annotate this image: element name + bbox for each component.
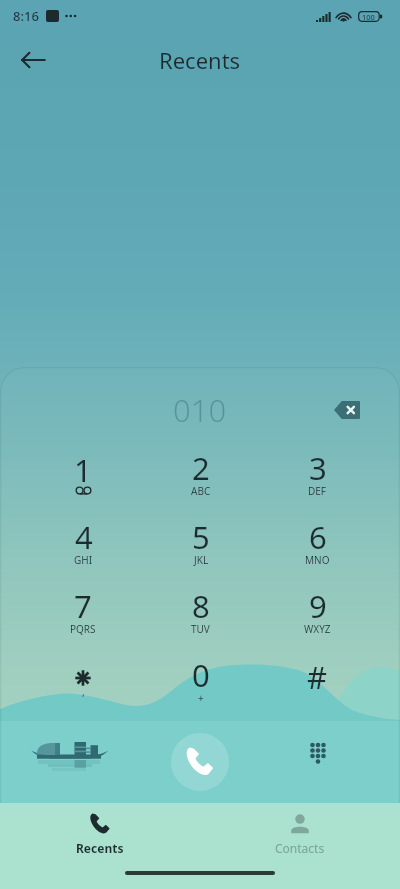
staticText: 6 bbox=[309, 516, 327, 558]
button[interactable]: Back bbox=[12, 39, 54, 81]
button[interactable]: Contacts bbox=[200, 803, 400, 865]
staticText: Recents bbox=[76, 840, 124, 856]
staticText: 5 bbox=[192, 516, 210, 558]
button[interactable]: Keypad bbox=[297, 732, 339, 774]
button[interactable]: 6 bbox=[259, 509, 376, 578]
button[interactable]: , bbox=[24, 647, 142, 716]
button[interactable]: 5 bbox=[142, 509, 259, 578]
button[interactable]: 7 bbox=[24, 578, 142, 647]
button[interactable]: 0 bbox=[142, 647, 259, 716]
button[interactable]: Delete bbox=[330, 393, 364, 427]
button[interactable]: 8 bbox=[142, 578, 259, 647]
staticText: 3 bbox=[309, 447, 327, 489]
button[interactable]: 4 bbox=[24, 509, 142, 578]
button[interactable]: Recents bbox=[0, 803, 200, 865]
staticText: DEF bbox=[308, 484, 327, 498]
staticText: GHI bbox=[74, 553, 93, 567]
staticText: TUV bbox=[191, 622, 210, 636]
staticText: 1 bbox=[74, 449, 92, 491]
button[interactable]: # bbox=[259, 647, 376, 716]
staticText: 2 bbox=[192, 447, 210, 489]
staticText: 9 bbox=[309, 585, 327, 627]
staticText: ABC bbox=[191, 484, 211, 498]
staticText: Recents bbox=[159, 45, 241, 75]
button[interactable]: 1 bbox=[24, 440, 142, 509]
staticText: , bbox=[82, 685, 85, 699]
staticText: PQRS bbox=[70, 622, 96, 636]
staticText: WXYZ bbox=[304, 622, 331, 636]
button[interactable]: 3 bbox=[259, 440, 376, 509]
button[interactable]: 2 bbox=[142, 440, 259, 509]
staticText: + bbox=[198, 691, 204, 705]
button[interactable]: Call bbox=[171, 733, 229, 791]
staticText: 8 bbox=[192, 585, 210, 627]
staticText: JKL bbox=[194, 553, 209, 567]
staticText: 100 bbox=[362, 12, 375, 22]
button[interactable]: 9 bbox=[259, 578, 376, 647]
staticText: 4 bbox=[75, 516, 93, 558]
staticText: 8:16 bbox=[13, 7, 39, 25]
staticText: Contacts bbox=[275, 840, 325, 856]
staticText: MNO bbox=[305, 553, 330, 567]
staticText: # bbox=[307, 656, 328, 698]
staticText: 0 bbox=[192, 654, 210, 696]
staticText: 7 bbox=[74, 585, 92, 627]
staticText: 010 bbox=[173, 389, 227, 431]
